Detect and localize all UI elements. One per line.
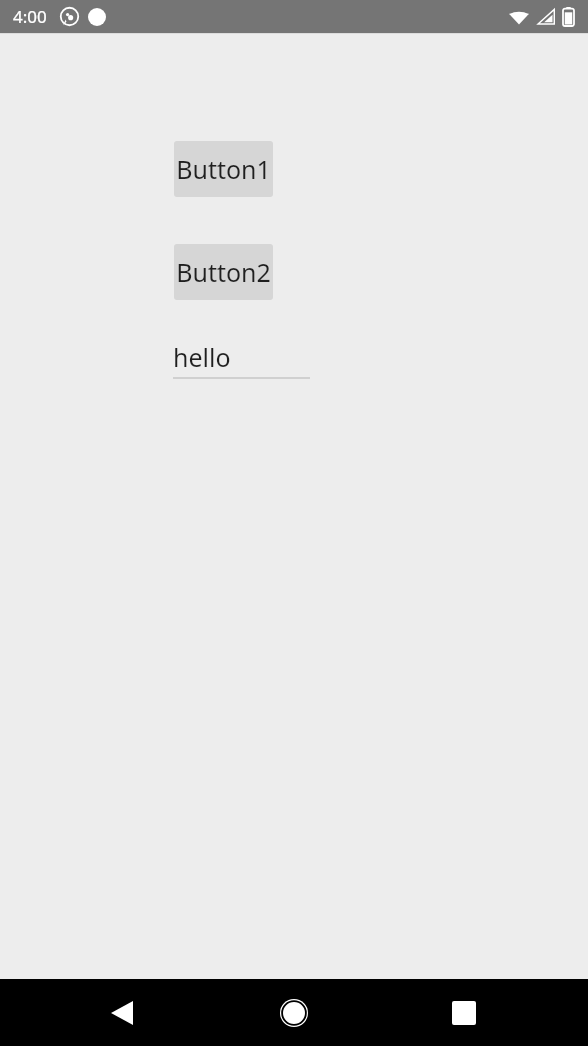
button[interactable]: Home [268,979,320,1046]
button[interactable]: Button2 [174,244,273,300]
staticText: Button2 [176,255,271,289]
staticText: Button1 [176,152,271,186]
staticText: hello [173,340,231,374]
button[interactable]: hello [173,338,310,379]
button[interactable]: Recent apps [438,979,490,1046]
button[interactable]: Button1 [174,141,273,197]
button[interactable]: Back [96,979,148,1046]
staticText: 4:00 [13,5,47,28]
